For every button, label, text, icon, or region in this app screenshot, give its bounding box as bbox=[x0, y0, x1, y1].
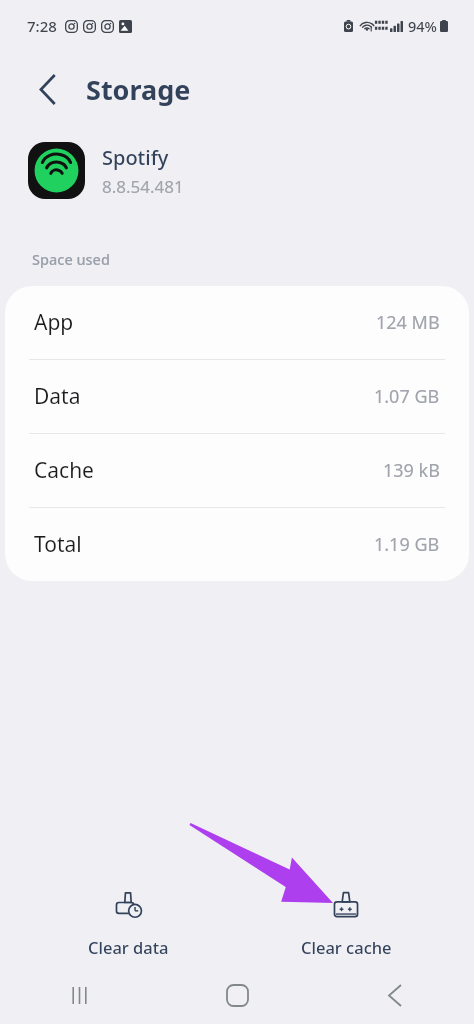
button[interactable]: Cache bbox=[5, 434, 469, 507]
button[interactable]: Data bbox=[5, 360, 469, 433]
staticText: Clear data bbox=[88, 936, 169, 958]
button[interactable]: Back bbox=[24, 66, 70, 112]
button[interactable]: Clear cache bbox=[256, 885, 436, 964]
staticText: Storage bbox=[86, 71, 191, 108]
staticText: 1.07 GB bbox=[374, 384, 440, 409]
staticText: 1.19 GB bbox=[374, 532, 440, 557]
staticText: App bbox=[34, 308, 74, 337]
staticText: Data bbox=[34, 382, 81, 411]
staticText: 7:28 bbox=[27, 16, 57, 36]
staticText: 8.8.54.481 bbox=[102, 175, 184, 198]
button[interactable]: Clear data bbox=[38, 885, 218, 964]
button[interactable]: Total bbox=[5, 508, 469, 581]
staticText: Cache bbox=[34, 456, 94, 485]
button[interactable]: Back bbox=[316, 966, 474, 1024]
staticText: Total bbox=[34, 530, 82, 559]
staticText: Space used bbox=[32, 249, 110, 269]
button[interactable]: Recent apps bbox=[0, 966, 158, 1024]
staticText: Spotify bbox=[102, 144, 169, 171]
staticText: Clear cache bbox=[301, 936, 392, 958]
staticText: 124 MB bbox=[376, 310, 440, 335]
staticText: 94% bbox=[408, 16, 437, 36]
button[interactable]: App bbox=[5, 286, 469, 359]
button[interactable]: Home bbox=[158, 966, 316, 1024]
staticText: 139 kB bbox=[383, 458, 440, 483]
